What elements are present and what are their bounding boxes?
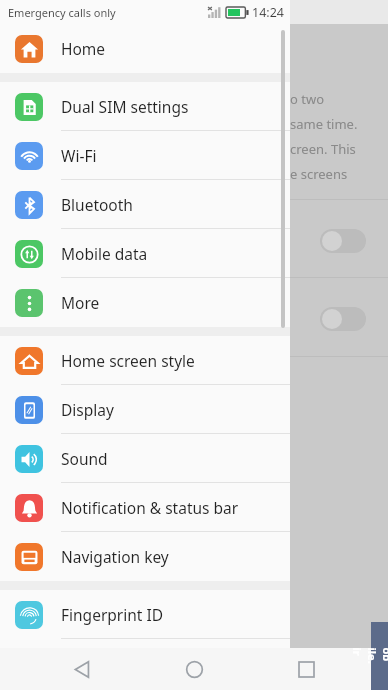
staticText: Display: [61, 399, 114, 420]
button[interactable]: Wi-Fi: [0, 131, 290, 180]
button[interactable]: Home: [0, 24, 290, 73]
button[interactable]: Home screen style: [0, 336, 290, 385]
staticText: mobile.ir: [349, 647, 388, 664]
staticText: Fingerprint ID: [61, 604, 164, 625]
staticText: o two: [290, 90, 325, 108]
staticText: Emergency calls only: [8, 5, 116, 20]
staticText: e screens: [290, 165, 348, 183]
staticText: same time.: [290, 115, 358, 133]
staticText: creen. This: [290, 140, 356, 158]
staticText: Notification & status bar: [61, 497, 239, 518]
button[interactable]: Mobile data: [0, 229, 290, 278]
staticText: Navigation key: [61, 546, 169, 567]
staticText: Sound: [61, 448, 108, 469]
button[interactable]: Display: [0, 385, 290, 434]
button[interactable]: Home: [164, 648, 224, 690]
staticText: Home screen style: [61, 350, 195, 371]
button[interactable]: Dual SIM settings: [0, 82, 290, 131]
staticText: Mobile data: [61, 243, 148, 264]
button[interactable]: Recents: [276, 648, 336, 690]
staticText: 14:24: [252, 4, 284, 21]
staticText: Bluetooth: [61, 194, 133, 215]
button[interactable]: Back: [52, 648, 112, 690]
staticText: Wi-Fi: [61, 145, 97, 166]
button[interactable]: Notification & status bar: [0, 483, 290, 532]
staticText: Dual SIM settings: [61, 96, 189, 117]
button[interactable]: More: [0, 278, 290, 327]
button[interactable]: Fingerprint ID: [0, 590, 290, 639]
button[interactable]: Bluetooth: [0, 180, 290, 229]
staticText: Home: [61, 38, 106, 59]
staticText: More: [61, 292, 100, 313]
button[interactable]: Navigation key: [0, 532, 290, 581]
button[interactable]: Sound: [0, 434, 290, 483]
